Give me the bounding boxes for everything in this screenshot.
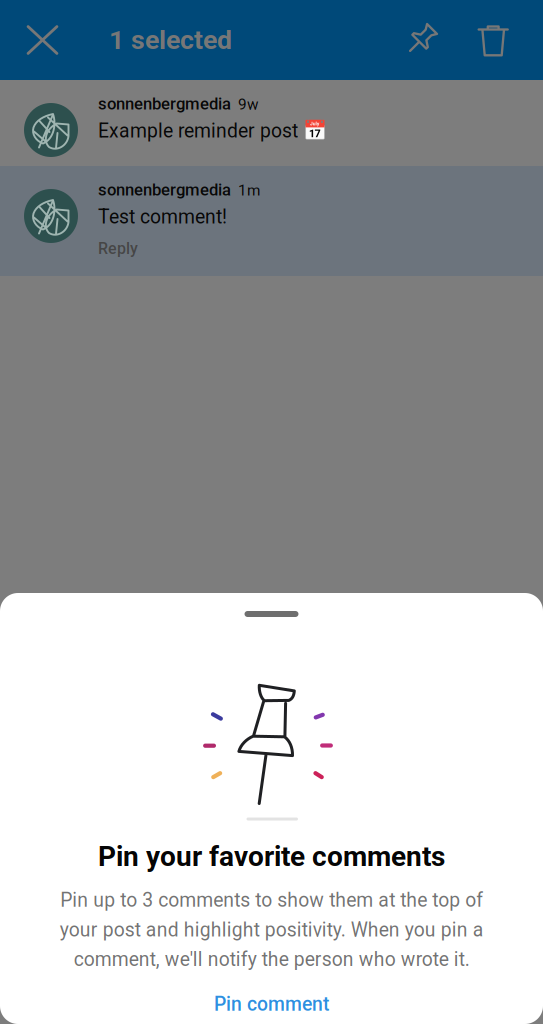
staticText: Reply — [98, 239, 138, 258]
staticText: Test comment! — [98, 205, 227, 228]
staticText: sonnenbergmedia — [98, 94, 231, 113]
button[interactable]: sonnenbergmedia — [0, 166, 543, 276]
staticText: 1m — [238, 181, 260, 199]
staticText: 9w — [238, 95, 259, 113]
staticText: sonnenbergmedia — [98, 180, 231, 199]
staticText: Example reminder post 📅 — [98, 119, 327, 142]
button[interactable]: Pin — [385, 0, 457, 80]
button[interactable]: Pin comment — [0, 971, 543, 1024]
button[interactable]: Delete — [457, 0, 529, 80]
staticText: Pin your favorite comments — [98, 840, 445, 873]
staticText: Pin up to 3 comments to show them at the… — [59, 889, 483, 971]
staticText: Pin comment — [214, 993, 329, 1015]
button[interactable]: sonnenbergmedia — [0, 80, 543, 166]
staticText: 1 selected — [109, 24, 232, 56]
button[interactable]: Close — [0, 0, 85, 80]
button[interactable]: 1 selected — [85, 0, 242, 80]
